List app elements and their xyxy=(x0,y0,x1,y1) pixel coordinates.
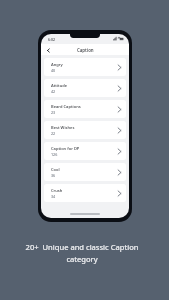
staticText: Crush xyxy=(51,188,63,193)
staticText: 23 xyxy=(51,110,56,115)
staticText: Caption for DP xyxy=(51,146,80,151)
button[interactable]: Best Wishes xyxy=(44,121,126,139)
staticText: 36 xyxy=(51,173,56,178)
button[interactable]: Caption for DP xyxy=(44,142,126,160)
staticText: 20+ Unique and classic Caption category xyxy=(22,242,142,265)
button[interactable]: Beard Captions xyxy=(44,100,126,118)
button[interactable]: Angry xyxy=(44,58,126,76)
staticText: Cool xyxy=(51,167,60,172)
button[interactable]: Attitude xyxy=(44,79,126,97)
staticText: Attitude xyxy=(51,83,68,88)
button[interactable]: Back xyxy=(43,45,53,55)
staticText: Best Wishes xyxy=(51,125,75,130)
staticText: 34 xyxy=(51,194,56,199)
staticText: 22 xyxy=(51,131,56,136)
staticText: Angry xyxy=(51,62,63,67)
button[interactable]: Crush xyxy=(44,184,126,202)
staticText: 42 xyxy=(51,89,56,94)
staticText: Beard Captions xyxy=(51,104,81,109)
staticText: 126 xyxy=(51,152,58,157)
staticText: Caption xyxy=(77,47,94,53)
button[interactable]: Cool xyxy=(44,163,126,181)
staticText: 40 xyxy=(51,68,56,73)
staticText: 6:02 xyxy=(48,37,55,42)
